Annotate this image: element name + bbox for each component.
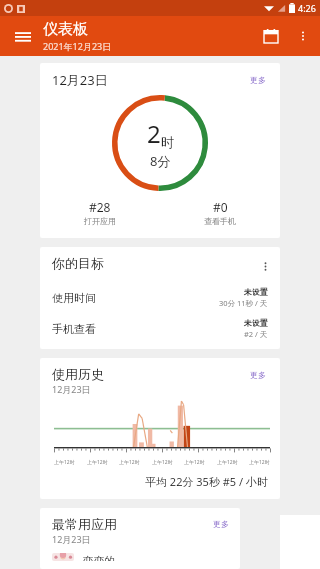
staticText: 你的目标 — [52, 255, 104, 271]
button[interactable]: 更多 — [246, 366, 270, 384]
button[interactable]: 更多 — [210, 516, 232, 532]
staticText: #28 — [89, 199, 111, 215]
staticText: 8分 — [150, 152, 171, 170]
button[interactable]: Calendar — [254, 19, 288, 53]
staticText: 手机查看 — [52, 322, 96, 336]
staticText: 4:26 — [298, 2, 316, 14]
staticText: 更多 — [213, 519, 229, 529]
staticText: 未设置 — [244, 287, 268, 297]
staticText: 上午12时 — [184, 459, 205, 466]
staticText: 30分 11秒 / 天 — [219, 298, 268, 308]
staticText: 恋恋的.. — [82, 553, 121, 561]
staticText: 更多 — [250, 75, 266, 85]
button[interactable]: More options — [288, 21, 318, 51]
staticText: 12月23日 — [52, 71, 108, 89]
staticText: 上午12时 — [87, 459, 108, 466]
staticText: #2 / 天 — [244, 329, 268, 339]
button[interactable] — [54, 401, 270, 459]
staticText: 更多 — [250, 370, 266, 380]
staticText: 查看手机 — [204, 216, 236, 226]
button[interactable]: Menu — [6, 19, 40, 53]
staticText: 12月23日 — [52, 383, 91, 395]
staticText: 打开应用 — [84, 216, 116, 226]
button[interactable]: #28 — [40, 199, 160, 226]
button[interactable]: 手机查看 — [40, 308, 280, 339]
staticText: 时 — [161, 134, 174, 150]
staticText: 使用历史 — [52, 366, 104, 382]
staticText: 平均 22分 35秒 #5 / 小时 — [145, 474, 268, 489]
staticText: 12月23日 — [52, 533, 91, 545]
staticText: 上午12时 — [152, 459, 173, 466]
staticText: 使用时间 — [52, 291, 96, 305]
button[interactable]: 使用时间 — [40, 277, 280, 308]
staticText: 上午12时 — [119, 459, 140, 466]
staticText: 上午12时 — [54, 459, 75, 466]
button[interactable]: 更多 — [246, 71, 270, 89]
staticText: 最常用应用 — [52, 516, 117, 532]
staticText: 上午12时 — [249, 459, 270, 466]
staticText: 2 — [147, 117, 161, 150]
staticText: 未设置 — [244, 318, 268, 328]
staticText: 仪表板 — [43, 20, 88, 39]
staticText: 2021年12月23日 — [43, 40, 112, 52]
button[interactable]: #0 — [160, 199, 280, 226]
button[interactable]: 恋恋的.. — [40, 553, 240, 569]
button[interactable]: Goal options — [254, 255, 276, 277]
staticText: #0 — [213, 199, 228, 215]
staticText: 上午12时 — [217, 459, 238, 466]
